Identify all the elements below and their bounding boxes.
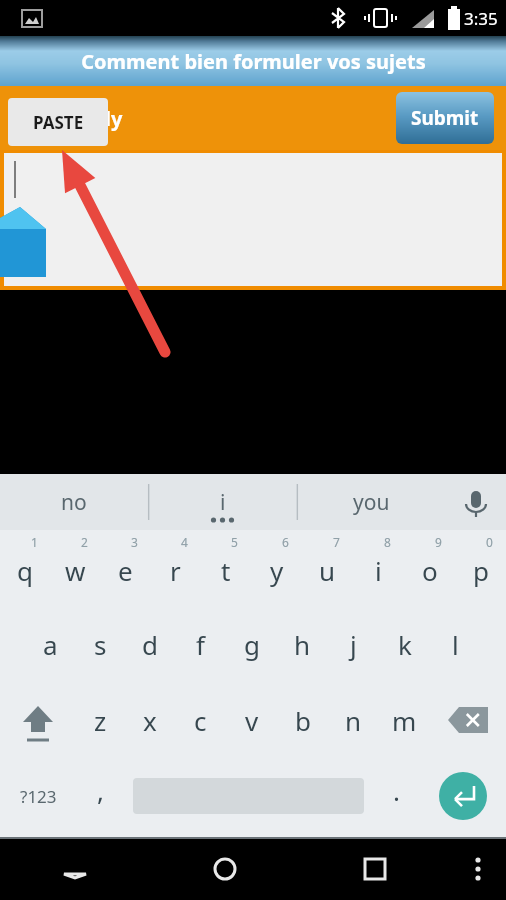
button[interactable]: 3 xyxy=(100,530,150,606)
button[interactable]: h xyxy=(277,606,328,682)
staticText: ?123 xyxy=(20,785,57,808)
staticText: y xyxy=(270,553,284,588)
staticText: x xyxy=(143,703,157,738)
button[interactable]: , xyxy=(76,758,124,834)
button[interactable]: Voice input xyxy=(446,474,506,530)
button[interactable] xyxy=(124,758,372,834)
button[interactable]: 7 xyxy=(302,530,353,606)
button[interactable]: d xyxy=(125,606,175,682)
button[interactable]: 1 xyxy=(0,530,50,606)
button[interactable]: no xyxy=(0,474,148,530)
staticText: o xyxy=(422,553,438,588)
staticText: a xyxy=(43,627,58,662)
button[interactable]: f xyxy=(175,606,226,682)
staticText: 1 xyxy=(31,534,38,550)
button[interactable]: 8 xyxy=(353,530,404,606)
button[interactable]: 9 xyxy=(404,530,455,606)
staticText: j xyxy=(350,627,357,662)
button[interactable]: k xyxy=(379,606,430,682)
staticText: t xyxy=(221,553,231,588)
staticText: 8 xyxy=(384,534,391,550)
button[interactable]: v xyxy=(226,682,277,758)
staticText: h xyxy=(294,627,311,662)
staticText: 3:35 xyxy=(464,7,498,30)
staticText: v xyxy=(245,703,259,738)
staticText: k xyxy=(398,627,412,662)
staticText: g xyxy=(244,627,260,662)
staticText: 7 xyxy=(333,534,340,550)
staticText: PASTE xyxy=(33,111,84,134)
staticText: you xyxy=(353,488,390,517)
button[interactable]: Submit xyxy=(396,92,494,144)
staticText: z xyxy=(94,703,107,738)
staticText: m xyxy=(392,703,417,738)
staticText: d xyxy=(142,627,158,662)
button[interactable]: l xyxy=(430,606,481,682)
staticText: 5 xyxy=(231,534,238,550)
staticText: q xyxy=(17,553,33,588)
button[interactable] xyxy=(4,153,502,286)
button[interactable]: 0 xyxy=(455,530,506,606)
button[interactable]: Home xyxy=(150,838,300,900)
staticText: w xyxy=(65,553,86,588)
button[interactable]: Backspace xyxy=(430,682,506,758)
button[interactable]: . xyxy=(372,758,420,834)
staticText: b xyxy=(295,703,311,738)
staticText: 9 xyxy=(435,534,442,550)
staticText: no xyxy=(61,488,87,517)
button[interactable]: j xyxy=(328,606,379,682)
staticText: , xyxy=(97,773,104,808)
button[interactable]: Back xyxy=(0,838,150,900)
button[interactable]: a xyxy=(25,606,75,682)
button[interactable]: 4 xyxy=(150,530,200,606)
button[interactable]: b xyxy=(277,682,328,758)
button[interactable]: i xyxy=(148,474,297,530)
button[interactable]: 2 xyxy=(50,530,100,606)
button[interactable]: z xyxy=(75,682,125,758)
button[interactable]: PASTE xyxy=(8,98,108,146)
staticText: l xyxy=(452,627,459,662)
staticText: Submit xyxy=(411,105,479,131)
staticText: i xyxy=(375,553,382,588)
staticText: u xyxy=(319,553,336,588)
button[interactable]: ?123 xyxy=(0,758,76,834)
button[interactable]: s xyxy=(75,606,125,682)
staticText: Comment bien formuler vos sujets xyxy=(81,48,426,75)
button[interactable]: Shift xyxy=(0,682,75,758)
staticText: 6 xyxy=(282,534,289,550)
button[interactable]: m xyxy=(379,682,430,758)
button[interactable]: c xyxy=(175,682,226,758)
staticText: ly xyxy=(105,105,123,132)
staticText: f xyxy=(196,627,205,662)
staticText: 4 xyxy=(181,534,188,550)
staticText: n xyxy=(345,703,362,738)
staticText: i xyxy=(220,488,226,517)
staticText: s xyxy=(94,627,107,662)
button[interactable]: 5 xyxy=(200,530,251,606)
button[interactable]: Enter xyxy=(420,758,506,834)
staticText: 3 xyxy=(131,534,138,550)
staticText: e xyxy=(118,553,133,588)
button[interactable]: 6 xyxy=(251,530,302,606)
button[interactable]: you xyxy=(297,474,446,530)
button[interactable]: n xyxy=(328,682,379,758)
staticText: 2 xyxy=(81,534,88,550)
staticText: c xyxy=(194,703,207,738)
button[interactable]: Recents xyxy=(300,838,450,900)
button[interactable]: More options xyxy=(450,838,506,900)
staticText: p xyxy=(473,553,489,588)
staticText: . xyxy=(393,773,400,808)
staticText: 0 xyxy=(486,534,493,550)
button[interactable]: g xyxy=(226,606,277,682)
button[interactable]: x xyxy=(125,682,175,758)
staticText: r xyxy=(170,553,181,588)
